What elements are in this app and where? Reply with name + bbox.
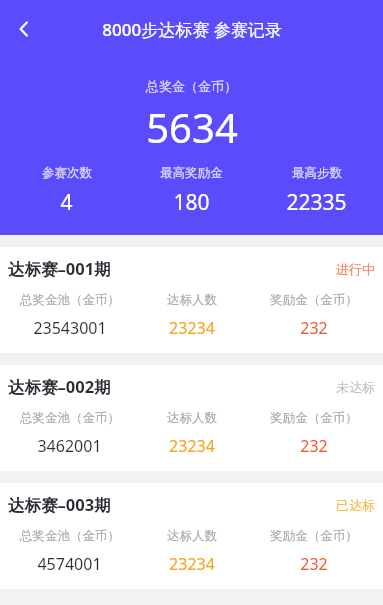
staticText: 8000步达标赛 参赛记录 <box>102 18 282 41</box>
staticText: 4574001 <box>37 553 102 575</box>
staticText: 参赛次数 <box>42 165 92 181</box>
staticText: 23234 <box>169 435 215 457</box>
staticText: 22335 <box>286 188 347 217</box>
staticText: 232 <box>300 435 328 457</box>
button[interactable]: 达标赛–003期 <box>0 483 383 589</box>
staticText: 3462001 <box>37 435 102 457</box>
staticText: 达标赛–002期 <box>8 375 111 398</box>
staticText: 奖励金（金币） <box>270 528 358 544</box>
staticText: 达标人数 <box>167 410 217 426</box>
staticText: 进行中 <box>336 261 375 277</box>
staticText: 5634 <box>146 100 238 154</box>
staticText: 总奖金（金币） <box>146 78 237 94</box>
staticText: 奖励金（金币） <box>270 410 358 426</box>
staticText: 232 <box>300 317 328 339</box>
staticText: 最高奖励金 <box>160 165 223 181</box>
staticText: 232 <box>300 553 328 575</box>
staticText: 达标人数 <box>167 528 217 544</box>
staticText: 已达标 <box>336 497 375 513</box>
staticText: 达标赛–003期 <box>8 493 111 516</box>
staticText: 达标赛–001期 <box>8 257 111 280</box>
button[interactable]: Back <box>2 7 46 51</box>
button[interactable]: 达标赛–001期 <box>0 247 383 353</box>
staticText: 未达标 <box>336 379 375 395</box>
button[interactable]: 达标赛–002期 <box>0 365 383 471</box>
staticText: 180 <box>173 188 210 217</box>
staticText: 总奖金池（金币） <box>20 528 120 544</box>
staticText: 23543001 <box>33 317 107 339</box>
staticText: 奖励金（金币） <box>270 292 358 308</box>
staticText: 23234 <box>169 317 215 339</box>
staticText: 4 <box>60 188 73 217</box>
staticText: 达标人数 <box>167 292 217 308</box>
staticText: 总奖金池（金币） <box>20 410 120 426</box>
staticText: 23234 <box>169 553 215 575</box>
staticText: 最高步数 <box>292 165 342 181</box>
staticText: 总奖金池（金币） <box>20 292 120 308</box>
